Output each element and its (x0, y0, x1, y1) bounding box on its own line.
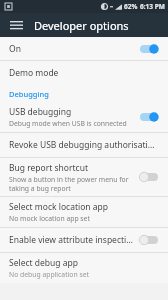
staticText: On (9, 43, 21, 55)
button[interactable]: Toggle off (138, 170, 160, 184)
button[interactable]: Bug report shortcut (0, 158, 168, 196)
staticText: Show a button in the power menu for taki… (9, 175, 134, 193)
button[interactable]: Select mock location app (0, 197, 168, 227)
button[interactable]: Enable view attribute inspection (0, 228, 168, 252)
staticText: Debugging (9, 89, 49, 99)
button[interactable]: Revoke USB debugging authorisations (0, 133, 168, 157)
staticText: Select debug app (9, 257, 78, 269)
button[interactable]: Open navigation menu (6, 15, 26, 35)
button[interactable]: Toggle on (138, 42, 160, 56)
staticText: Demo mode (9, 67, 59, 79)
staticText: No debug application set (9, 270, 89, 279)
button[interactable]: Toggle on (138, 110, 160, 124)
staticText: USB debugging (9, 106, 72, 118)
staticText: Revoke USB debugging authorisations (9, 139, 159, 151)
button[interactable]: USB debugging (0, 102, 168, 132)
button[interactable]: Toggle off (138, 233, 160, 247)
staticText: 6:13 PM (140, 2, 165, 11)
staticText: Enable view attribute inspection (9, 234, 134, 246)
button[interactable]: On (0, 37, 168, 60)
staticText: No mock location app set (9, 214, 90, 223)
button[interactable]: Select debug app (0, 253, 168, 283)
staticText: Debug mode when USB is connected (9, 119, 127, 128)
staticText: 62% (124, 2, 138, 11)
staticText: Bug report shortcut (9, 162, 88, 174)
staticText: Select mock location app (9, 201, 109, 213)
staticText: Developer options (34, 18, 129, 33)
button[interactable]: Demo mode (0, 61, 168, 85)
